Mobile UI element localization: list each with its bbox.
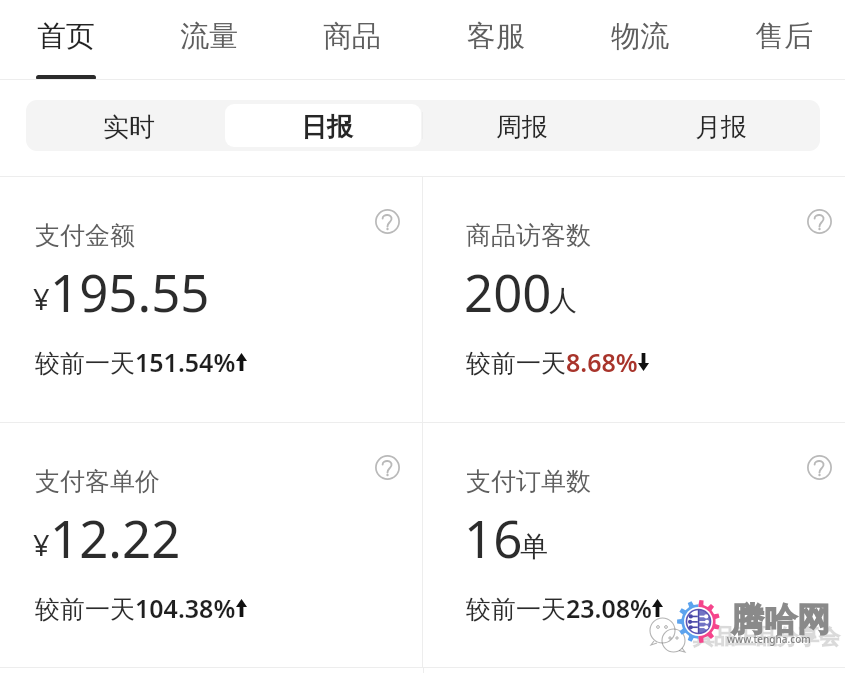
staticText: 首页 bbox=[37, 18, 95, 55]
button[interactable]: 首页 bbox=[0, 0, 137, 80]
button[interactable]: 售后 bbox=[712, 0, 845, 80]
button[interactable]: 客服 bbox=[424, 0, 568, 80]
staticText: 实时 bbox=[103, 111, 155, 144]
button[interactable]: 实时 bbox=[26, 100, 224, 151]
staticText: 人 bbox=[549, 283, 577, 318]
button[interactable]: 支付客单价 bbox=[0, 423, 422, 667]
button[interactable]: 商品访客数 bbox=[423, 177, 845, 422]
staticText: ¥ bbox=[33, 279, 50, 318]
staticText: 腾哈网 bbox=[731, 599, 830, 641]
button[interactable]: 支付订单数 bbox=[423, 423, 845, 667]
staticText: ¥ bbox=[33, 525, 50, 564]
staticText: 12.22 bbox=[50, 503, 181, 572]
button[interactable]: 帮助说明 bbox=[375, 209, 400, 234]
button[interactable]: 帮助说明 bbox=[375, 455, 400, 480]
staticText: 月报 bbox=[695, 111, 747, 144]
staticText: 售后 bbox=[755, 18, 813, 55]
button[interactable]: 商品 bbox=[280, 0, 424, 80]
staticText: 客服 bbox=[467, 18, 525, 55]
staticText: 日报 bbox=[301, 111, 353, 144]
staticText: 16 bbox=[464, 503, 523, 572]
staticText: 商品访客数 bbox=[466, 220, 591, 251]
staticText: 支付客单价 bbox=[35, 466, 160, 497]
staticText: 物流 bbox=[611, 18, 669, 55]
button[interactable]: 支付金额 bbox=[0, 177, 422, 422]
staticText: 200 bbox=[464, 257, 552, 326]
staticText: 真品正品分享会 bbox=[693, 624, 840, 650]
staticText: 流量 bbox=[180, 18, 238, 55]
button[interactable]: 帮助说明 bbox=[807, 455, 832, 480]
button[interactable]: 帮助说明 bbox=[807, 209, 832, 234]
button[interactable]: 流量 bbox=[137, 0, 280, 80]
staticText: 支付金额 bbox=[35, 220, 135, 251]
staticText: 商品 bbox=[323, 18, 381, 55]
button[interactable]: 月报 bbox=[621, 100, 820, 151]
staticText: 单 bbox=[520, 529, 548, 564]
button[interactable]: 周报 bbox=[422, 100, 621, 151]
staticText: 较前一天8.68% bbox=[466, 345, 638, 379]
staticText: 较前一天151.54% bbox=[35, 345, 236, 379]
staticText: 较前一天104.38% bbox=[35, 591, 236, 625]
staticText: www.tengha.com bbox=[727, 632, 811, 646]
staticText: 周报 bbox=[496, 111, 548, 144]
staticText: 支付订单数 bbox=[466, 466, 591, 497]
button[interactable]: 日报 bbox=[224, 100, 422, 151]
staticText: 较前一天23.08% bbox=[466, 591, 652, 625]
button[interactable]: 物流 bbox=[568, 0, 712, 80]
staticText: 195.55 bbox=[50, 257, 210, 326]
